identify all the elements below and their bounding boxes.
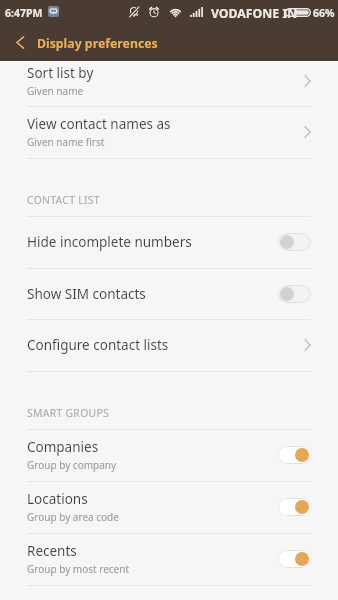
button[interactable]: Hide incomplete numbers [0, 216, 338, 268]
staticText: SMART GROUPS [27, 406, 110, 420]
staticText: 6:47PM [5, 6, 43, 20]
button[interactable]: Toggle on [278, 498, 311, 516]
staticText: Given name first [27, 135, 105, 149]
staticText: Hide incomplete numbers [27, 233, 192, 251]
staticText: Display preferences [37, 35, 158, 52]
staticText: 66% [313, 6, 335, 20]
button[interactable]: Recents [0, 533, 338, 585]
staticText: Group by company [27, 458, 117, 472]
button[interactable]: Toggle on [278, 446, 311, 464]
staticText: Given name [27, 84, 84, 98]
staticText: Show SIM contacts [27, 285, 146, 303]
button[interactable]: Companies [0, 429, 338, 481]
button[interactable]: Toggle off [278, 285, 311, 303]
staticText: Group by most recent [27, 562, 130, 576]
button[interactable]: Locations [0, 481, 338, 533]
staticText: Recents [27, 542, 77, 560]
staticText: Group by area code [27, 510, 119, 524]
button[interactable]: Show SIM contacts [0, 268, 338, 319]
staticText: Sort list by [27, 64, 94, 82]
staticText: View contact names as [27, 115, 171, 133]
staticText: VODAFONE IN [211, 5, 298, 22]
button[interactable]: Toggle on [278, 550, 311, 568]
staticText: CONTACT LIST [27, 193, 100, 207]
staticText: Configure contact lists [27, 336, 169, 354]
button[interactable]: Back [0, 26, 40, 61]
staticText: Locations [27, 490, 88, 508]
button[interactable]: View contact names as [0, 106, 338, 158]
button[interactable]: Toggle off [278, 233, 311, 251]
button[interactable]: Sort list by [0, 62, 338, 106]
button[interactable]: Configure contact lists [0, 319, 338, 371]
staticText: Companies [27, 438, 99, 456]
